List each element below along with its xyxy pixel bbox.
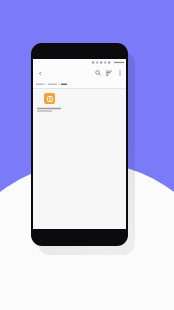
button[interactable]: Search bbox=[92, 67, 103, 78]
button[interactable]: More options bbox=[114, 67, 125, 78]
button[interactable]: Back bbox=[35, 68, 45, 78]
button[interactable]: Folder bbox=[36, 93, 62, 112]
button[interactable]: Sort bbox=[103, 67, 114, 78]
other: Folder bbox=[44, 93, 55, 104]
